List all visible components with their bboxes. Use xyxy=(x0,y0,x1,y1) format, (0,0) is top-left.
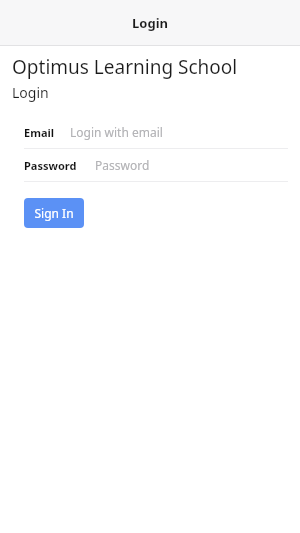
button[interactable]: Sign In xyxy=(24,198,84,228)
staticText: Password xyxy=(95,157,150,173)
staticText: Login xyxy=(132,14,168,32)
button[interactable]: Password xyxy=(0,149,300,181)
staticText: Sign In xyxy=(34,205,74,221)
staticText: Login xyxy=(12,83,49,102)
staticText: Optimus Learning School xyxy=(12,54,238,80)
staticText: Password xyxy=(24,158,77,173)
staticText: Email xyxy=(24,125,55,140)
button[interactable]: Email xyxy=(0,116,300,148)
staticText: Login with email xyxy=(70,124,163,140)
